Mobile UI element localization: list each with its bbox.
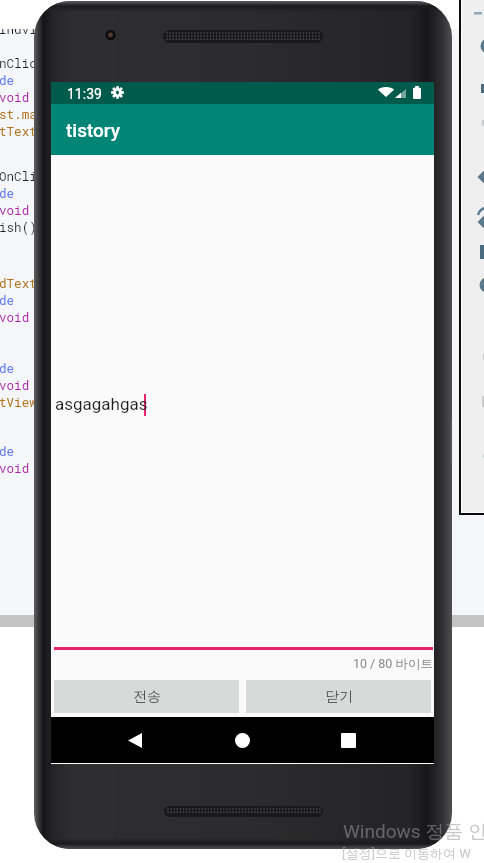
button[interactable]: Home bbox=[216, 717, 268, 763]
staticText: tView bbox=[0, 394, 37, 411]
staticText: de bbox=[0, 360, 15, 377]
button[interactable]: Settings bbox=[111, 86, 124, 99]
staticText: de bbox=[0, 185, 15, 202]
staticText: asgagahgas bbox=[55, 394, 148, 414]
staticText: 11:39 bbox=[67, 86, 102, 102]
button[interactable]: 전송 bbox=[54, 680, 239, 713]
staticText: 10 / 80 바이트 bbox=[51, 656, 433, 672]
button[interactable]: Back bbox=[109, 717, 161, 763]
staticText: nClic bbox=[0, 55, 37, 72]
staticText: de bbox=[0, 443, 15, 460]
staticText: dText bbox=[0, 275, 37, 292]
staticText: de bbox=[0, 72, 15, 89]
staticText: ish() bbox=[0, 219, 37, 236]
staticText: tistory bbox=[66, 119, 121, 141]
staticText: Windows 정품 인 bbox=[343, 820, 484, 844]
staticText: OnCli bbox=[0, 168, 37, 185]
staticText: tText bbox=[0, 123, 37, 140]
staticText: void bbox=[0, 202, 30, 219]
staticText: void bbox=[0, 377, 30, 394]
staticText: void bbox=[0, 89, 30, 106]
staticText: st.ma bbox=[0, 106, 37, 123]
button[interactable]: 닫기 bbox=[246, 680, 431, 713]
staticText: [설정]으로 이동하여 W bbox=[342, 845, 471, 861]
staticText: 닫기 bbox=[325, 688, 353, 706]
staticText: de bbox=[0, 292, 15, 309]
staticText: void bbox=[0, 309, 30, 326]
staticText: 전송 bbox=[133, 688, 161, 706]
staticText: void bbox=[0, 460, 30, 477]
button[interactable]: Recent apps bbox=[322, 717, 374, 763]
staticText: Indvi bbox=[0, 21, 37, 38]
